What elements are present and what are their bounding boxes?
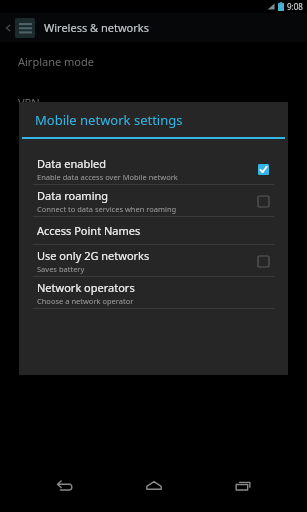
staticText: Data enabled (37, 156, 106, 171)
staticText: Data roaming (37, 188, 109, 203)
button[interactable]: Data roaming (19, 185, 288, 216)
button[interactable]: Checked (254, 160, 272, 178)
staticText: Network operators (37, 280, 135, 295)
button[interactable]: Unchecked (254, 192, 272, 210)
staticText: Use only 2G networks (37, 248, 150, 263)
button[interactable]: Recent apps (218, 461, 268, 511)
staticText: Enable data access over Mobile network (37, 172, 178, 182)
staticText: Choose a network operator (37, 296, 134, 306)
button[interactable]: Data enabled (19, 153, 288, 184)
button[interactable]: Home (129, 461, 179, 511)
staticText: Connect to data services when roaming (37, 204, 177, 214)
button[interactable]: Access Point Names (19, 217, 288, 244)
button[interactable]: Wireless & networks (0, 13, 307, 42)
staticText: Airplane mode (18, 54, 94, 69)
staticText: 9:08 (287, 1, 303, 12)
button[interactable]: Use only 2G networks (19, 245, 288, 276)
staticText: Mobile network settings (35, 111, 183, 129)
staticText: VPN (18, 95, 40, 110)
button[interactable]: Back (39, 461, 89, 511)
staticText: Access Point Names (37, 223, 141, 238)
staticText: Wireless & networks (44, 20, 149, 35)
button[interactable]: Unchecked (254, 252, 272, 270)
button[interactable]: Network operators (19, 277, 288, 308)
staticText: Saves battery (37, 264, 85, 274)
